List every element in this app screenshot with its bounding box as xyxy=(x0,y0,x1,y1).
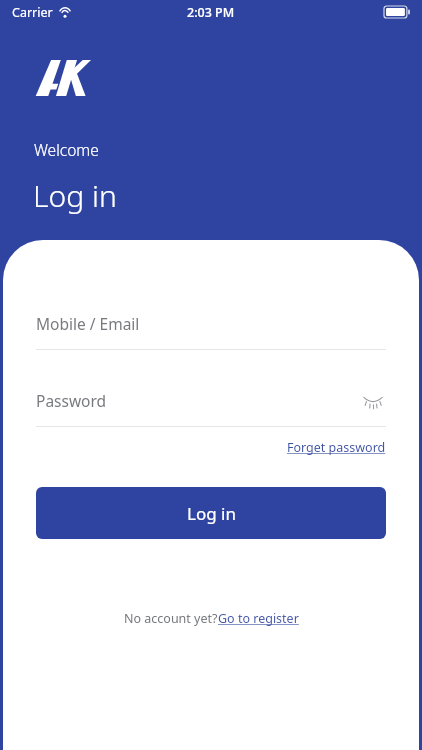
button[interactable]: Password xyxy=(36,386,386,427)
button[interactable]: Go to register xyxy=(218,607,299,630)
staticText: Password xyxy=(36,390,107,411)
button[interactable]: Mobile / Email xyxy=(36,309,386,350)
button[interactable]: Forget password xyxy=(285,436,388,459)
staticText: 2:03 PM xyxy=(187,4,235,21)
staticText: Mobile / Email xyxy=(36,313,140,334)
staticText: Welcome xyxy=(34,139,99,160)
staticText: Carrier xyxy=(12,4,53,21)
staticText: Forget password xyxy=(287,439,386,456)
staticText: No account yet? xyxy=(124,610,218,627)
button[interactable]: Log in xyxy=(36,487,386,539)
staticText: Go to register xyxy=(218,610,299,627)
staticText: Log in xyxy=(33,175,117,216)
staticText: Log in xyxy=(187,502,236,525)
button[interactable]: Show password xyxy=(360,388,386,414)
